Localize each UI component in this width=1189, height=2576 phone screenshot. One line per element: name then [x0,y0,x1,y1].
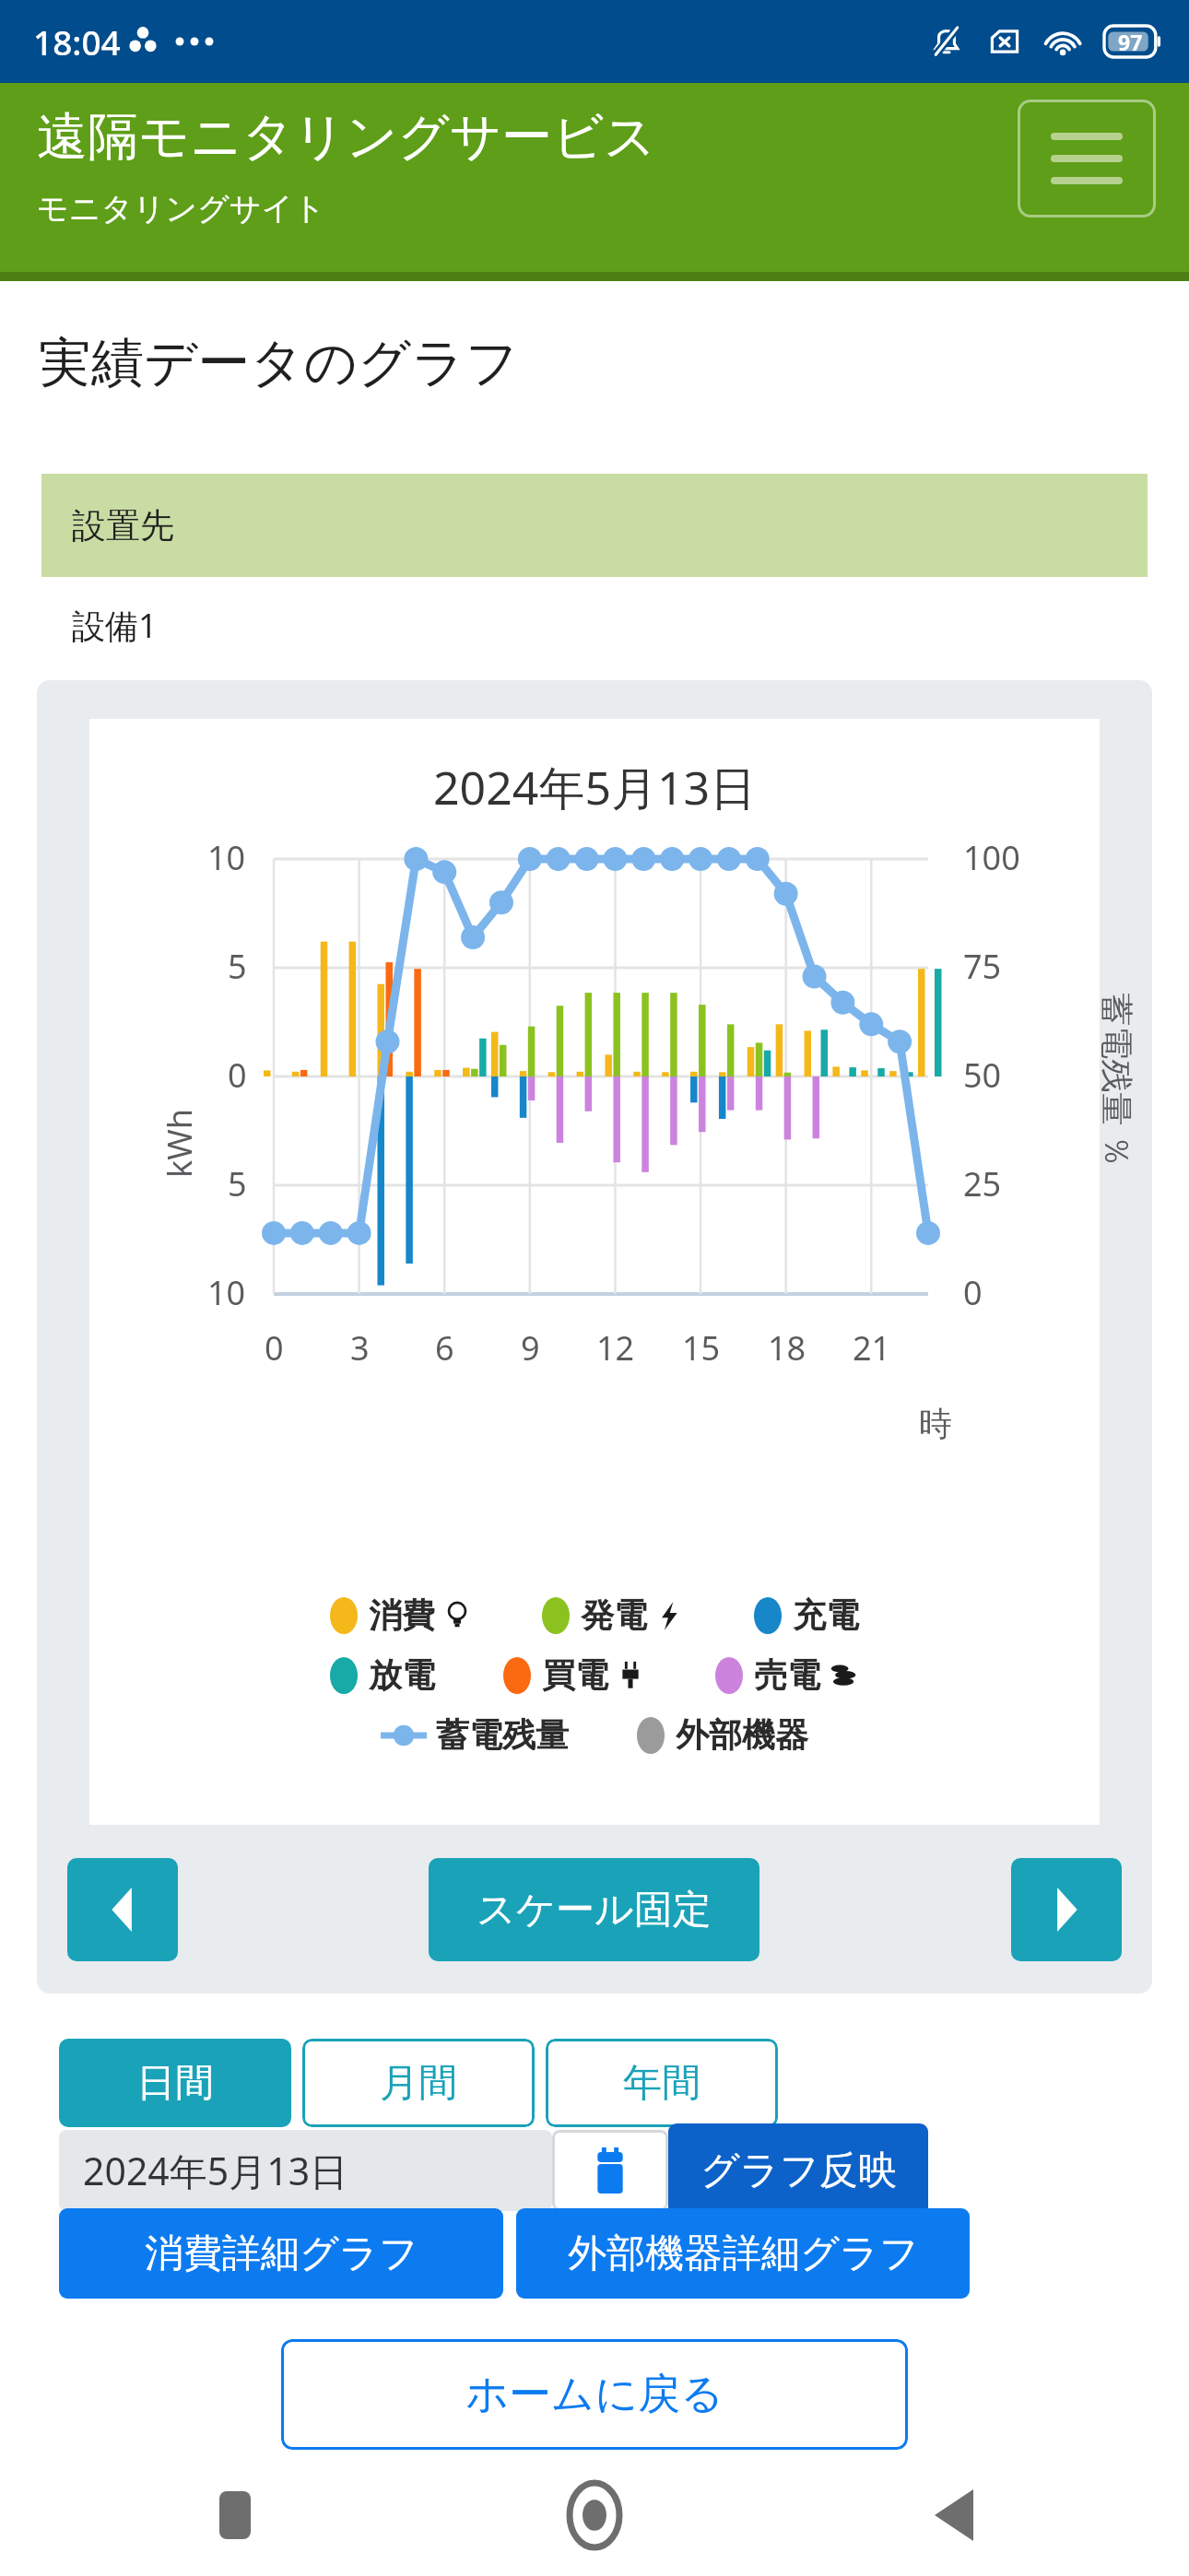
staticText: 外部機器詳細グラフ [568,2229,919,2278]
staticText: 年間 [623,2059,700,2108]
staticText: ホームに戻る [465,2368,724,2421]
staticText: 25 [963,1161,1002,1206]
button[interactable]: 日間 [59,2039,291,2127]
staticText: 売電 [754,1654,820,1696]
staticText: グラフ反映 [700,2147,897,2195]
staticText: 買電 [542,1654,608,1696]
staticText: 0 [228,1053,247,1098]
staticText: モニタリングサイト [37,189,326,229]
staticText: 50 [963,1053,1002,1098]
staticText: 15 [682,1325,721,1370]
staticText: 消費 [369,1594,435,1636]
staticText: 実績データのグラフ [39,330,520,396]
button[interactable]: 年間 [546,2039,778,2127]
staticText: 時 [919,1403,952,1444]
button[interactable]: 2024年5月13日 [59,2130,552,2211]
staticText: kWh [157,1109,202,1178]
staticText: 18:04 [33,18,121,65]
staticText: 10 [207,1270,246,1315]
staticText: 2024年5月13日 [83,2145,348,2196]
staticText: 3 [350,1325,370,1370]
staticText: 2024年5月13日 [433,756,757,818]
staticText: 0 [265,1325,284,1370]
staticText: 月間 [380,2059,457,2108]
button[interactable]: Menu [1018,100,1156,218]
staticText: 放電 [369,1654,435,1696]
button[interactable]: Previous [67,1858,178,1961]
button[interactable]: Recents [184,2464,286,2566]
staticText: 遠隔モニタリングサービス [37,105,656,169]
staticText: 設置先 [72,504,174,547]
button[interactable]: 月間 [302,2039,535,2127]
staticText: 75 [963,944,1002,989]
staticText: 97 [1118,28,1143,56]
button[interactable]: Next [1011,1858,1122,1961]
button[interactable]: ホームに戻る [281,2339,908,2450]
staticText: 9 [521,1325,540,1370]
staticText: 蓄電残量 [436,1714,569,1756]
button[interactable]: 消費詳細グラフ [59,2208,503,2299]
staticText: 0 [963,1270,983,1315]
staticText: 10 [207,835,246,880]
staticText: 5 [228,1161,247,1206]
button[interactable]: Pick date [552,2130,668,2211]
staticText: 蓄電残量 ％ [1095,993,1140,1168]
staticText: 消費詳細グラフ [145,2229,418,2278]
button[interactable]: Back [903,2464,1005,2566]
staticText: 18 [768,1325,806,1370]
staticText: スケール固定 [477,1886,712,1935]
staticText: 5 [228,944,247,989]
staticText: 100 [963,835,1020,880]
staticText: 充電 [793,1594,859,1636]
staticText: 6 [435,1325,454,1370]
button[interactable]: スケール固定 [429,1858,759,1961]
staticText: 発電 [581,1594,647,1636]
button[interactable]: 外部機器詳細グラフ [516,2208,970,2299]
staticText: 設備1 [72,603,158,648]
button[interactable]: グラフ反映 [668,2123,928,2217]
staticText: 21 [853,1325,891,1370]
button[interactable]: Home [544,2464,645,2566]
staticText: 外部機器 [676,1714,808,1756]
staticText: 日間 [136,2059,214,2108]
staticText: 12 [596,1325,635,1370]
